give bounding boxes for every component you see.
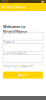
staticText: Email address xyxy=(3,29,20,33)
button[interactable]: Forgot your password? xyxy=(3,65,33,68)
staticText: Confirm password xyxy=(3,52,27,55)
staticText: 9:41 xyxy=(2,0,9,3)
staticText: Sign In xyxy=(18,73,28,77)
button[interactable]: Sign In xyxy=(3,72,43,79)
staticText: BrandName xyxy=(2,4,26,10)
staticText: Forgot your password? xyxy=(3,64,33,68)
staticText: ▮▮▮ xyxy=(41,0,44,3)
staticText: Password xyxy=(3,40,15,44)
staticText: Welcome to BrandName xyxy=(3,24,27,34)
